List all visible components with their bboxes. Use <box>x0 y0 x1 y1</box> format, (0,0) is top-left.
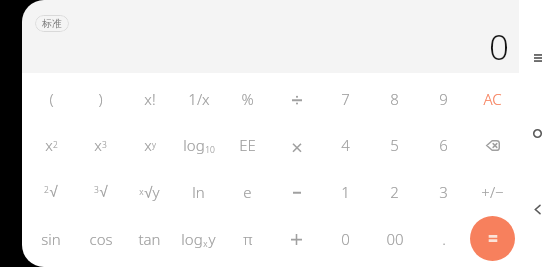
staticText: x <box>139 186 144 198</box>
staticText: log <box>181 229 203 249</box>
staticText: EE <box>239 135 256 155</box>
button[interactable]: x! <box>125 76 174 122</box>
button[interactable]: tan <box>125 215 174 262</box>
button[interactable] <box>272 122 321 168</box>
staticText: 7 <box>341 89 350 109</box>
staticText: 1/x <box>188 89 210 109</box>
staticText: tan <box>138 229 161 249</box>
staticText: √ <box>49 183 58 200</box>
staticText: x <box>203 238 208 250</box>
staticText: x! <box>144 89 156 109</box>
staticText: 4 <box>341 135 350 155</box>
staticText: 0 <box>489 23 509 71</box>
button[interactable]: 2 <box>26 168 76 215</box>
staticText: +/− <box>481 182 504 202</box>
button[interactable]: 9 <box>419 76 468 122</box>
staticText: % <box>241 89 254 109</box>
staticText: 10 <box>205 144 215 156</box>
staticText: ) <box>98 89 103 109</box>
button[interactable]: % <box>223 76 272 122</box>
button[interactable]: x <box>76 122 125 168</box>
button[interactable]: 1 <box>321 168 370 215</box>
button[interactable]: 6 <box>419 122 468 168</box>
staticText: x <box>45 135 53 155</box>
button[interactable]: 3 <box>419 168 468 215</box>
button[interactable]: 2 <box>370 168 419 215</box>
button[interactable]: x <box>26 122 76 168</box>
button[interactable] <box>272 168 321 215</box>
button[interactable]: x <box>125 122 174 168</box>
button[interactable]: 4 <box>321 122 370 168</box>
button[interactable]: 0 <box>321 215 370 262</box>
button[interactable] <box>272 76 321 122</box>
button[interactable]: Equals <box>470 216 515 261</box>
staticText: 9 <box>439 89 448 109</box>
staticText: x <box>144 135 152 155</box>
button[interactable]: 5 <box>370 122 419 168</box>
staticText: ( <box>49 89 54 109</box>
button[interactable]: ) <box>76 76 125 122</box>
button[interactable]: ( <box>26 76 76 122</box>
staticText: 6 <box>439 135 448 155</box>
button[interactable]: log <box>174 215 223 262</box>
button[interactable] <box>272 215 321 262</box>
button[interactable]: +/− <box>468 168 517 215</box>
button[interactable]: sin <box>26 215 76 262</box>
staticText: 00 <box>386 229 404 249</box>
button[interactable] <box>468 122 517 168</box>
button[interactable]: e <box>223 168 272 215</box>
staticText: √y <box>144 182 160 202</box>
staticText: √ <box>99 183 108 200</box>
staticText: AC <box>483 89 502 109</box>
staticText: 3 <box>94 184 99 196</box>
staticText: 1 <box>341 182 350 202</box>
button[interactable]: Back <box>519 191 556 228</box>
button[interactable]: AC <box>468 76 517 122</box>
staticText: 5 <box>390 135 399 155</box>
staticText: x <box>94 135 102 155</box>
staticText: . <box>442 229 446 249</box>
staticText: 3 <box>439 182 448 202</box>
button[interactable]: π <box>223 215 272 262</box>
button[interactable]: 7 <box>321 76 370 122</box>
staticText: 3 <box>102 139 107 151</box>
button[interactable]: cos <box>76 215 125 262</box>
staticText: y <box>152 139 156 151</box>
staticText: sin <box>41 229 61 249</box>
staticText: 标准 <box>42 17 62 30</box>
button[interactable]: Home <box>519 115 556 152</box>
button[interactable]: log <box>174 122 223 168</box>
staticText: y <box>208 229 216 249</box>
staticText: ln <box>192 182 205 202</box>
staticText: 0 <box>341 229 350 249</box>
staticText: π <box>243 229 253 249</box>
staticText: log <box>183 135 205 155</box>
button[interactable]: ln <box>174 168 223 215</box>
button[interactable]: 3 <box>76 168 125 215</box>
button[interactable]: EE <box>223 122 272 168</box>
staticText: 2 <box>53 139 58 151</box>
staticText: 2 <box>44 184 49 196</box>
button[interactable]: 8 <box>370 76 419 122</box>
button[interactable]: 00 <box>370 215 419 262</box>
staticText: 2 <box>390 182 399 202</box>
staticText: e <box>243 182 252 202</box>
button[interactable]: 1/x <box>174 76 223 122</box>
staticText: 8 <box>390 89 399 109</box>
staticText: cos <box>89 229 113 249</box>
button[interactable]: x <box>125 168 174 215</box>
button[interactable]: 标准 <box>35 15 69 32</box>
button[interactable]: Recent apps <box>519 39 556 76</box>
button[interactable]: Equals <box>468 215 517 262</box>
